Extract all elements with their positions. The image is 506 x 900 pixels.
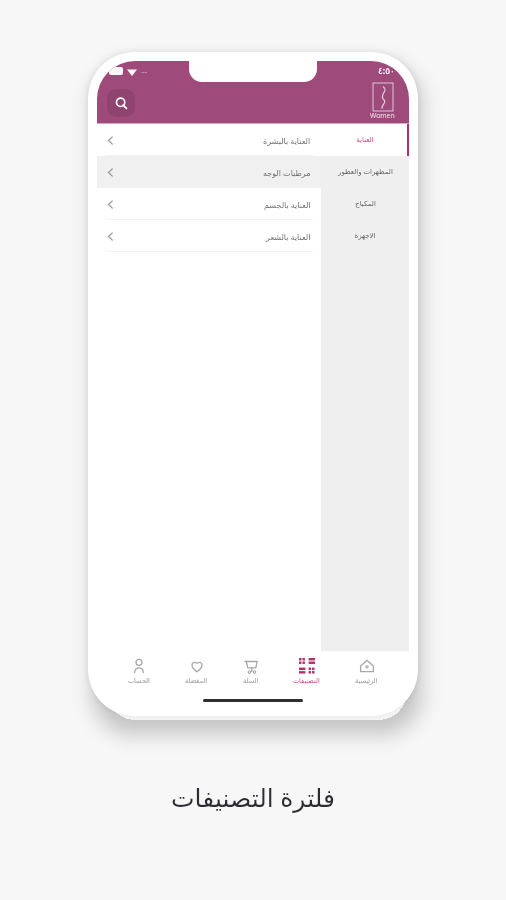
button[interactable]: Women logo — [370, 83, 395, 121]
staticText: العناية بالجسم — [264, 199, 311, 210]
staticText: الحساب — [128, 677, 150, 685]
button[interactable]: العناية — [321, 124, 409, 156]
staticText: .... — [141, 67, 148, 75]
staticText: السلة — [243, 677, 259, 685]
staticText: المطهرات والعطور — [338, 167, 393, 177]
button[interactable]: المكياج — [321, 188, 409, 220]
staticText: ٤:٥٠ — [378, 64, 395, 76]
button[interactable]: السلة — [239, 656, 263, 687]
staticText: المفضلة — [185, 677, 208, 685]
button[interactable]: المفضلة — [181, 656, 212, 687]
staticText: الاجهزة — [354, 232, 376, 240]
button[interactable]: الاجهزة — [321, 220, 409, 252]
staticText: Women — [370, 111, 395, 121]
staticText: الرئيسية — [355, 677, 378, 685]
staticText: مرطبات الوجه — [263, 167, 311, 178]
button[interactable]: العناية بالشعر — [97, 220, 321, 252]
button[interactable]: التصنيفات — [289, 656, 324, 687]
button[interactable]: العناية بالبشرة — [97, 124, 321, 156]
staticText: التصنيفات — [293, 677, 320, 685]
button[interactable]: الحساب — [124, 656, 154, 687]
staticText: العناية بالبشرة — [263, 135, 311, 146]
button[interactable]: المطهرات والعطور — [321, 156, 409, 188]
button[interactable]: Search — [107, 89, 135, 117]
button[interactable]: مرطبات الوجه — [97, 156, 321, 188]
staticText: العناية بالشعر — [266, 231, 311, 242]
staticText: المكياج — [355, 200, 376, 208]
staticText: العناية — [356, 136, 374, 144]
staticText: فلترة التصنيفات — [171, 780, 335, 814]
button[interactable]: الرئيسية — [351, 656, 382, 687]
button[interactable]: العناية بالجسم — [97, 188, 321, 220]
